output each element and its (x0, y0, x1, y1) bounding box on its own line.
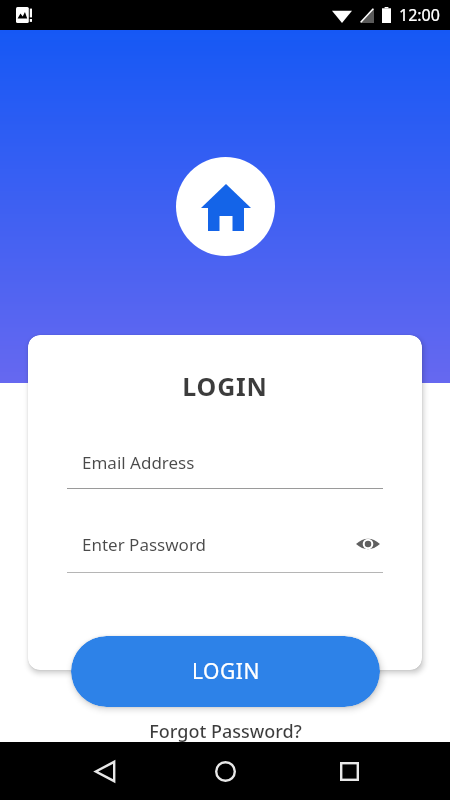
button[interactable]: Show password (353, 529, 383, 559)
staticText: 12:00 (399, 4, 440, 26)
button[interactable]: Back (84, 750, 126, 792)
button[interactable]: LOGIN (71, 636, 380, 707)
button[interactable]: Email Address (67, 451, 383, 489)
button[interactable]: Recent apps (328, 750, 370, 792)
staticText: Enter Password (82, 533, 353, 556)
staticText: LOGIN (28, 369, 422, 403)
button[interactable]: Enter Password (67, 529, 383, 559)
button[interactable]: Home (204, 750, 246, 792)
button[interactable]: Forgot Password? (0, 719, 450, 751)
staticText: LOGIN (192, 657, 260, 686)
staticText: Email Address (82, 451, 195, 474)
staticText: Forgot Password? (149, 719, 302, 744)
